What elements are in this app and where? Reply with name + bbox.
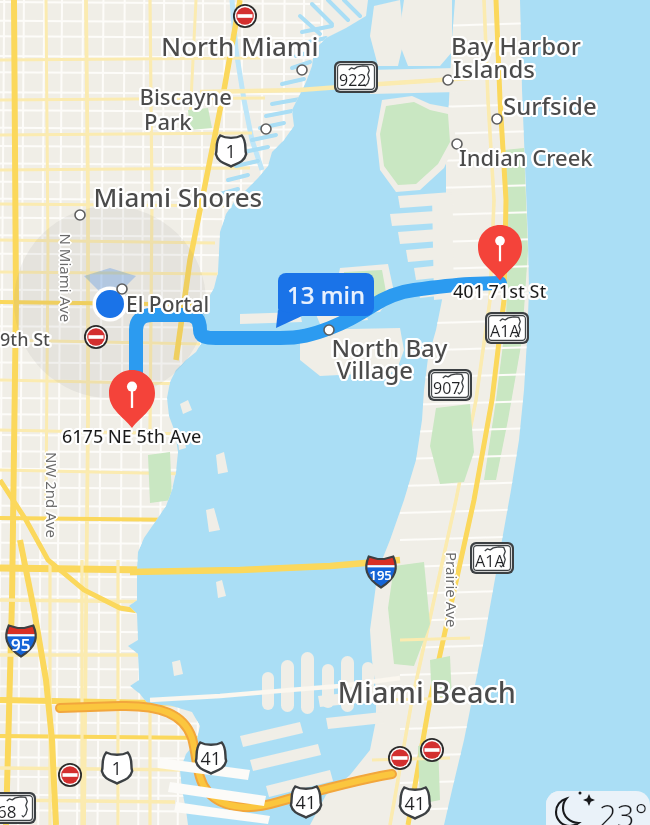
button[interactable]: 13 min [278,273,374,316]
staticText: 13 min [287,278,365,311]
button[interactable]: Map of Miami showing route [0,0,650,825]
button[interactable]: Weather, 23 degrees, clear night [546,791,650,825]
